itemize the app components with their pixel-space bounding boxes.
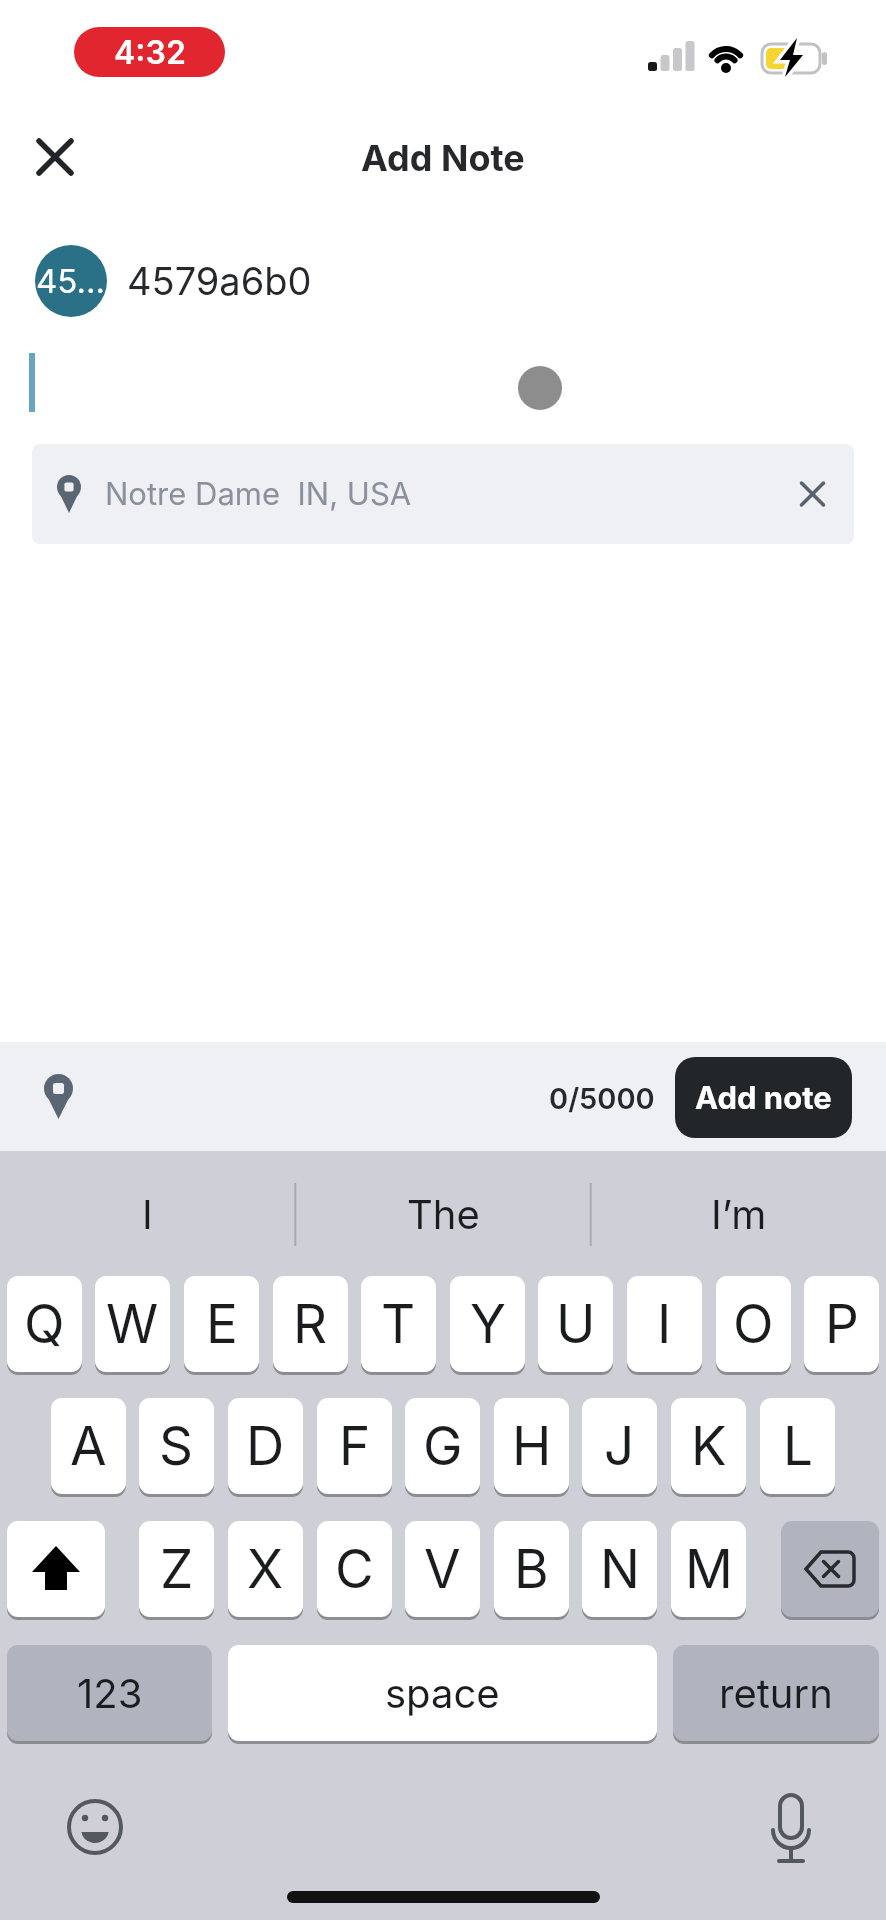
button[interactable]: X bbox=[228, 1521, 303, 1617]
staticText: F bbox=[339, 1414, 371, 1478]
staticText: G bbox=[423, 1414, 463, 1478]
staticText: X bbox=[247, 1537, 284, 1601]
staticText: N bbox=[600, 1537, 640, 1601]
staticText: E bbox=[206, 1292, 238, 1356]
button[interactable] bbox=[30, 132, 80, 182]
button[interactable]: D bbox=[228, 1398, 303, 1494]
button[interactable]: N bbox=[582, 1521, 657, 1617]
button[interactable] bbox=[7, 1521, 105, 1617]
button[interactable]: P bbox=[804, 1276, 879, 1372]
button[interactable]: I bbox=[627, 1276, 702, 1372]
staticText: space bbox=[385, 1669, 500, 1717]
button[interactable]: M bbox=[671, 1521, 746, 1617]
staticText: return bbox=[719, 1669, 833, 1717]
button[interactable]: 45… bbox=[35, 245, 107, 317]
button[interactable]: S bbox=[139, 1398, 214, 1494]
staticText: Y bbox=[470, 1292, 506, 1356]
button[interactable]: 123 bbox=[7, 1645, 212, 1741]
staticText: Q bbox=[24, 1292, 65, 1356]
button[interactable]: L bbox=[760, 1398, 835, 1494]
staticText: O bbox=[733, 1292, 774, 1356]
staticText: H bbox=[512, 1414, 552, 1478]
button[interactable]: Q bbox=[7, 1276, 82, 1372]
staticText: M bbox=[685, 1537, 733, 1601]
button[interactable] bbox=[34, 1064, 94, 1129]
staticText: B bbox=[514, 1537, 549, 1601]
button[interactable]: O bbox=[716, 1276, 791, 1372]
staticText: Add note bbox=[695, 1079, 832, 1117]
staticText: Notre Dame IN, USA bbox=[105, 475, 412, 513]
staticText: I bbox=[142, 1190, 153, 1238]
staticText: Add Note bbox=[361, 136, 525, 180]
button[interactable]: U bbox=[538, 1276, 613, 1372]
button[interactable]: G bbox=[405, 1398, 480, 1494]
button[interactable]: F bbox=[317, 1398, 392, 1494]
button[interactable]: Z bbox=[139, 1521, 214, 1617]
button[interactable]: K bbox=[671, 1398, 746, 1494]
staticText: D bbox=[246, 1414, 285, 1478]
staticText: T bbox=[381, 1292, 416, 1356]
button[interactable] bbox=[62, 1794, 128, 1860]
staticText: J bbox=[604, 1414, 635, 1478]
button[interactable]: I’m bbox=[591, 1183, 886, 1245]
staticText: 123 bbox=[77, 1669, 143, 1717]
button[interactable]: space bbox=[228, 1645, 657, 1741]
button[interactable]: H bbox=[494, 1398, 569, 1494]
staticText: W bbox=[106, 1292, 159, 1356]
button[interactable]: A bbox=[51, 1398, 126, 1494]
button[interactable]: W bbox=[95, 1276, 170, 1372]
staticText: 45… bbox=[36, 261, 106, 301]
button[interactable]: T bbox=[361, 1276, 436, 1372]
staticText: C bbox=[335, 1537, 374, 1601]
button[interactable]: return bbox=[673, 1645, 879, 1741]
staticText: 4579a6b0 bbox=[127, 258, 312, 304]
staticText: L bbox=[783, 1414, 813, 1478]
button[interactable] bbox=[758, 1794, 824, 1860]
button[interactable]: B bbox=[494, 1521, 569, 1617]
staticText: V bbox=[424, 1537, 461, 1601]
button[interactable]: C bbox=[317, 1521, 392, 1617]
button[interactable] bbox=[781, 1521, 879, 1617]
staticText: The bbox=[407, 1190, 480, 1238]
button[interactable]: 4:32 bbox=[74, 27, 225, 77]
staticText: P bbox=[825, 1292, 859, 1356]
staticText: I bbox=[657, 1292, 672, 1356]
staticText: 4:32 bbox=[114, 33, 186, 72]
staticText: K bbox=[691, 1414, 727, 1478]
button[interactable]: E bbox=[184, 1276, 259, 1372]
staticText: Z bbox=[160, 1537, 194, 1601]
button[interactable]: Y bbox=[450, 1276, 525, 1372]
staticText: A bbox=[70, 1414, 107, 1478]
staticText: 0/5000 bbox=[549, 1081, 655, 1116]
button[interactable]: V bbox=[405, 1521, 480, 1617]
staticText: U bbox=[556, 1292, 596, 1356]
button[interactable]: I bbox=[0, 1183, 295, 1245]
button[interactable]: Add note bbox=[675, 1057, 852, 1138]
button[interactable]: The bbox=[295, 1183, 591, 1245]
staticText: I’m bbox=[711, 1190, 767, 1238]
staticText: S bbox=[159, 1414, 194, 1478]
staticText: R bbox=[293, 1292, 328, 1356]
button[interactable]: J bbox=[582, 1398, 657, 1494]
button[interactable]: R bbox=[273, 1276, 348, 1372]
button[interactable]: Notre Dame IN, USA bbox=[32, 444, 854, 544]
